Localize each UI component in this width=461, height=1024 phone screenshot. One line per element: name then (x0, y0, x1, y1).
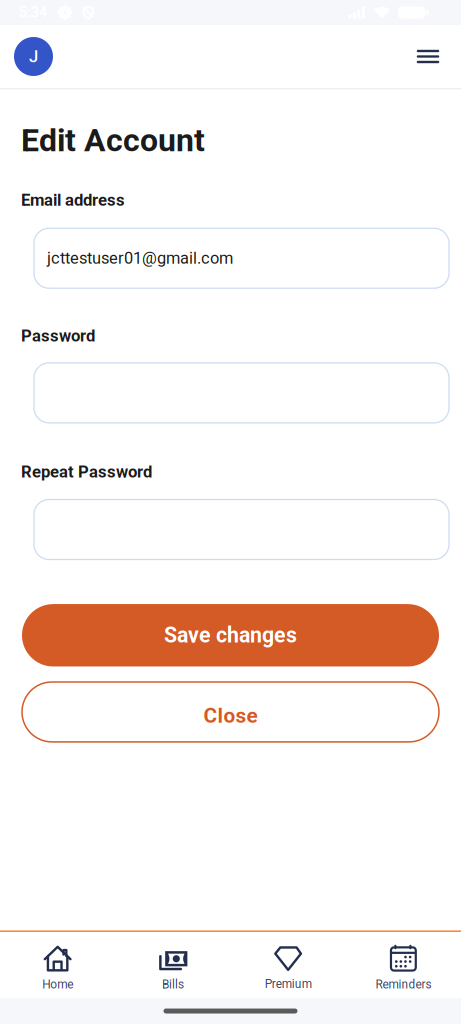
staticText: Edit Account (21, 121, 205, 159)
staticText: Email address (21, 190, 125, 210)
staticText: J (29, 47, 38, 66)
staticText: 5:34 (19, 4, 47, 21)
staticText: jcttestuser01@gmail.com (47, 249, 233, 268)
staticText: Save changes (164, 623, 297, 648)
button[interactable]: Email address (0, 228, 461, 288)
staticText: Reminders (375, 977, 431, 991)
button[interactable]: Password (0, 363, 461, 423)
staticText: Bills (162, 977, 184, 991)
button[interactable]: Account (7, 26, 60, 86)
button[interactable]: Reminders (346, 932, 461, 998)
staticText: Close (203, 703, 257, 728)
button[interactable]: Close (0, 682, 461, 742)
button[interactable]: Open menu (406, 26, 450, 86)
staticText: Repeat Password (21, 462, 152, 481)
staticText: Home (42, 977, 73, 991)
button[interactable]: Home (0, 932, 115, 998)
button[interactable]: Premium (230, 932, 346, 998)
staticText: Premium (265, 977, 312, 991)
button[interactable]: Bills (115, 932, 230, 998)
button[interactable]: Repeat Password (0, 499, 461, 559)
staticText: Password (21, 326, 95, 345)
button[interactable]: Save changes (0, 604, 461, 666)
